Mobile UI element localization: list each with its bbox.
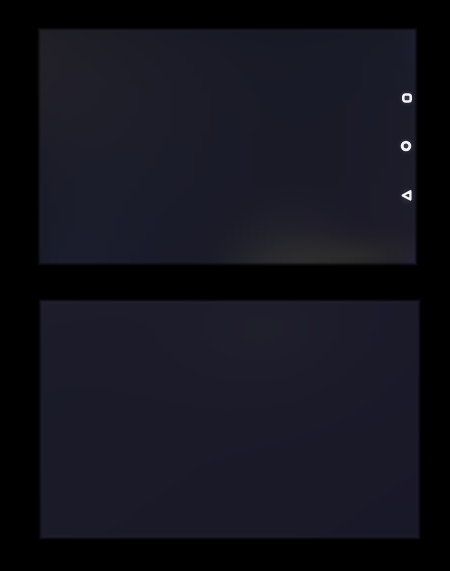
button[interactable]: Back bbox=[399, 188, 415, 204]
button[interactable]: Recents bbox=[399, 90, 415, 106]
button[interactable]: Home bbox=[398, 138, 414, 154]
